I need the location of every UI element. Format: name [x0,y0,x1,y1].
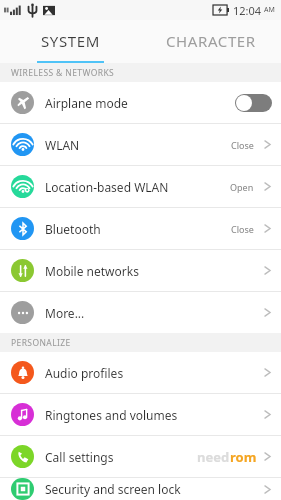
staticText: Open [230,181,254,193]
staticText: Location-based WLAN [45,179,169,195]
staticText: CHARACTER [166,31,256,51]
staticText: Close [231,223,254,235]
button[interactable]: Location-based WLAN [0,166,281,207]
staticText: Bluetooth [45,221,101,237]
button[interactable]: CHARACTER [140,20,281,61]
staticText: WLAN [45,137,80,153]
button[interactable]: Airplane mode [0,82,281,123]
staticText: PERSONALIZE [11,337,71,349]
staticText: Call settings [45,449,114,465]
staticText: Ringtones and volumes [45,407,178,423]
staticText: SYSTEM [41,31,100,51]
button[interactable]: Bluetooth [0,208,281,249]
button[interactable]: Audio profiles [0,352,281,393]
staticText: WIRELESS & NETWORKS [11,67,115,79]
button[interactable]: WLAN [0,124,281,165]
staticText: Close [231,139,254,151]
button[interactable]: Security and screen lock [0,478,281,500]
staticText: More... [45,305,85,321]
button[interactable]: SYSTEM [0,20,140,61]
staticText: Airplane mode [45,95,128,111]
staticText: 12:04 [233,3,262,18]
button[interactable]: Call settings [0,436,281,477]
staticText: Mobile networks [45,263,139,279]
button[interactable]: More... [0,292,281,333]
staticText: Audio profiles [45,365,124,381]
staticText: rom [230,448,257,466]
button[interactable]: Airplane mode toggle [235,94,272,112]
staticText: Security and screen lock [45,481,181,497]
button[interactable]: Mobile networks [0,250,281,291]
staticText: need [197,448,230,466]
button[interactable]: Ringtones and volumes [0,394,281,435]
staticText: AM [264,5,275,15]
